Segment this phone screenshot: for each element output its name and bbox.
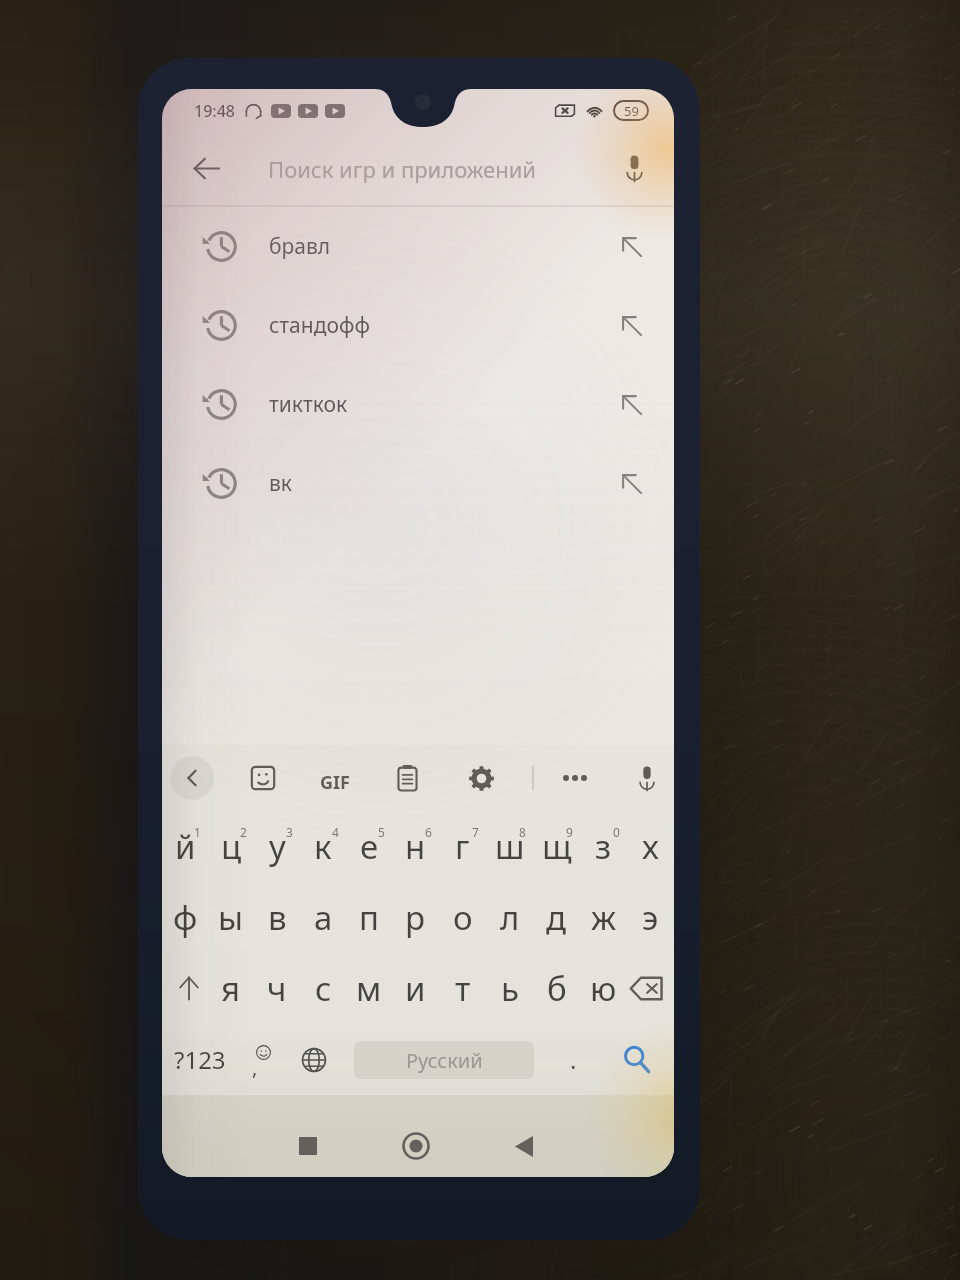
button[interactable]: Back (493, 1115, 555, 1177)
staticText: тикткок (269, 390, 348, 419)
button[interactable]: я (208, 953, 254, 1024)
staticText: л (500, 895, 520, 940)
staticText: ц (221, 824, 242, 869)
button[interactable]: ф (162, 882, 208, 953)
button[interactable]: Shift (162, 953, 208, 1024)
staticText: 1 (194, 824, 201, 840)
staticText: 5 (378, 824, 385, 840)
button[interactable]: Collapse toolbar (170, 756, 214, 800)
staticText: а (314, 895, 333, 940)
button[interactable]: с (300, 953, 346, 1024)
staticText: э (642, 895, 659, 940)
staticText: бравл (269, 232, 331, 261)
button[interactable]: Search (612, 1024, 660, 1095)
staticText: 59 (624, 102, 639, 120)
staticText: г (455, 824, 470, 869)
staticText: о (453, 895, 473, 940)
staticText: ?123 (174, 1043, 226, 1076)
staticText: GIF (320, 770, 350, 795)
button[interactable]: Home (385, 1115, 447, 1177)
staticText: н (405, 824, 426, 869)
button[interactable]: р (392, 882, 439, 953)
button[interactable]: бравл (162, 207, 674, 286)
staticText: . (570, 1043, 577, 1076)
button[interactable]: ы (208, 882, 254, 953)
staticText: ф (173, 895, 198, 940)
staticText: 7 (472, 824, 479, 840)
button[interactable]: й (162, 811, 208, 882)
button[interactable]: ?123 (168, 1024, 232, 1095)
button[interactable]: Voice search (613, 147, 655, 189)
staticText: ь (501, 966, 519, 1011)
button[interactable]: м (346, 953, 392, 1024)
staticText: в (268, 895, 287, 940)
staticText: Поиск игр и приложений (268, 154, 537, 184)
button[interactable]: ь (486, 953, 533, 1024)
staticText: д (546, 895, 567, 940)
staticText: 19:48 (194, 100, 235, 122)
button[interactable]: стандофф (162, 286, 674, 365)
button[interactable]: More (555, 758, 595, 798)
button[interactable]: т (439, 953, 486, 1024)
staticText: ю (590, 966, 617, 1011)
button[interactable]: е (346, 811, 392, 882)
button[interactable]: э (627, 882, 674, 953)
button[interactable]: з (580, 811, 627, 882)
button[interactable]: Voice input (627, 758, 667, 798)
staticText: щ (542, 824, 572, 869)
button[interactable]: х (627, 811, 674, 882)
button[interactable]: тикткок (162, 365, 674, 444)
button[interactable]: ш (486, 811, 533, 882)
button[interactable]: вк (162, 444, 674, 523)
staticText: х (642, 824, 659, 869)
button[interactable]: д (533, 882, 580, 953)
button[interactable]: и (392, 953, 439, 1024)
button[interactable]: у (254, 811, 300, 882)
button[interactable]: л (486, 882, 533, 953)
button[interactable]: Recents (277, 1115, 339, 1177)
button[interactable]: о (439, 882, 486, 953)
button[interactable]: GIF (311, 758, 359, 806)
staticText: й (175, 824, 196, 869)
button[interactable]: ч (254, 953, 300, 1024)
button[interactable]: Stickers (243, 758, 283, 798)
staticText: ч (267, 966, 287, 1011)
button[interactable]: Clipboard (387, 758, 427, 798)
button[interactable]: Русский (354, 1041, 534, 1079)
button[interactable]: в (254, 882, 300, 953)
staticText: б (547, 966, 567, 1011)
button[interactable]: Change language (290, 1024, 338, 1095)
button[interactable]: . (549, 1024, 597, 1095)
staticText: ж (591, 895, 617, 940)
button[interactable]: щ (533, 811, 580, 882)
staticText: я (221, 966, 241, 1011)
button[interactable]: к (300, 811, 346, 882)
staticText: 3 (286, 824, 293, 840)
staticText: вк (269, 469, 292, 498)
button[interactable]: ц (208, 811, 254, 882)
staticText: и (405, 966, 426, 1011)
staticText: с (315, 966, 332, 1011)
button[interactable]: Emoji (238, 1024, 286, 1095)
button[interactable]: Backspace (627, 953, 674, 1024)
staticText: к (314, 824, 332, 869)
staticText: стандофф (269, 311, 370, 340)
staticText: 0 (613, 824, 620, 840)
staticText: е (360, 824, 379, 869)
staticText: ы (218, 895, 244, 940)
button[interactable]: ж (580, 882, 627, 953)
button[interactable]: ю (580, 953, 627, 1024)
staticText: т (455, 966, 471, 1011)
button[interactable]: п (346, 882, 392, 953)
staticText: п (359, 895, 379, 940)
staticText: з (595, 824, 612, 869)
button[interactable]: г (439, 811, 486, 882)
button[interactable]: б (533, 953, 580, 1024)
button[interactable]: Settings (461, 758, 501, 798)
staticText: ш (495, 824, 525, 869)
button[interactable]: а (300, 882, 346, 953)
staticText: 2 (240, 824, 247, 840)
button[interactable]: н (392, 811, 439, 882)
staticText: р (405, 895, 426, 940)
button[interactable]: Back (183, 145, 229, 191)
